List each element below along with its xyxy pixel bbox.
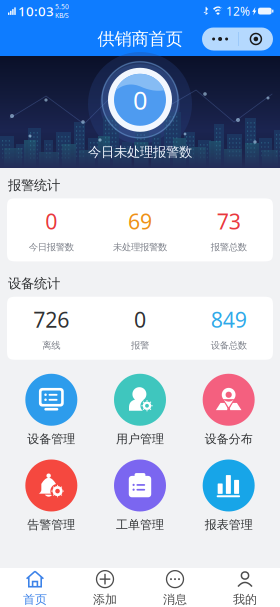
staticText: 12% [226,3,250,19]
button[interactable]: 消息 [140,564,210,607]
staticText: 设备总数 [211,340,247,351]
staticText: 离线 [42,340,60,351]
staticText: 设备分布 [205,432,253,446]
staticText: 消息 [163,592,187,607]
staticText: 报警总数 [211,241,247,253]
button[interactable]: 设备分布 [184,374,273,446]
staticText: 报警 [131,340,149,351]
button[interactable]: 添加 [70,564,140,607]
staticText: 工单管理 [116,517,164,532]
staticText: 设备统计 [8,275,60,292]
staticText: 今日未处理报警数 [88,144,192,160]
staticText: 报表管理 [205,517,253,532]
staticText: KB/S [55,11,69,20]
staticText: 设备管理 [27,432,75,446]
staticText: 5.50 [55,2,69,11]
button[interactable]: 工单管理 [96,459,184,532]
staticText: 我的 [233,592,257,607]
staticText: 添加 [93,592,117,607]
staticText: 未处理报警数 [113,241,167,253]
button[interactable]: 报表管理 [184,459,273,532]
button[interactable]: More options [202,27,273,50]
staticText: 726 [33,305,69,334]
button[interactable]: 设备管理 [7,374,96,446]
button[interactable]: 我的 [210,564,280,607]
staticText: 用户管理 [116,432,164,446]
staticText: 首页 [23,592,47,607]
staticText: 报警统计 [8,177,60,193]
staticText: 73 [217,207,241,235]
staticText: 10:03 [18,2,54,20]
button[interactable]: 用户管理 [96,374,184,446]
staticText: 告警管理 [27,517,75,532]
staticText: 今日报警数 [29,241,74,253]
staticText: 0 [133,83,147,117]
button[interactable]: 告警管理 [7,459,96,532]
staticText: 849 [211,305,247,334]
staticText: 0 [45,207,57,235]
staticText: 供销商首页 [97,28,182,50]
button[interactable]: 首页 [0,564,70,607]
staticText: 69 [128,207,152,235]
staticText: 0 [134,305,146,334]
